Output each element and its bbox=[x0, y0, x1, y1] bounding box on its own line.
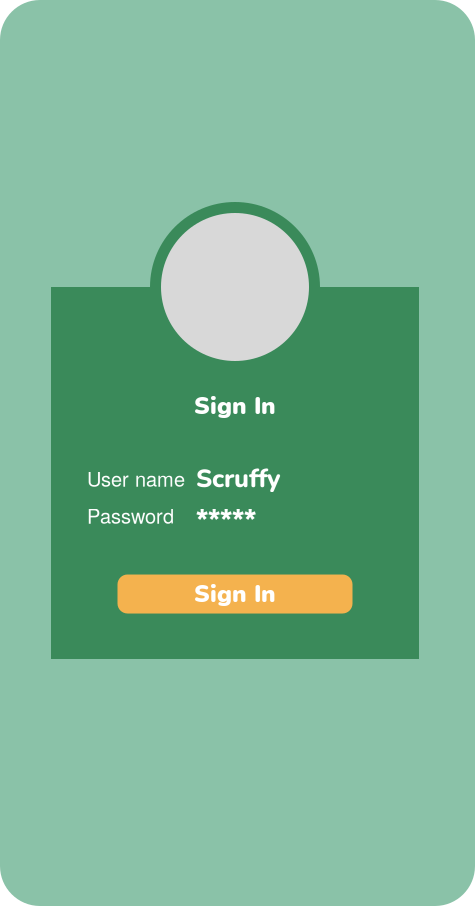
staticText: Scruffy bbox=[196, 462, 281, 496]
staticText: Password bbox=[87, 501, 174, 529]
staticText: User name bbox=[87, 464, 185, 492]
staticText: Sign In bbox=[194, 578, 276, 610]
staticText: Sign In bbox=[194, 390, 276, 422]
staticText: ***** bbox=[196, 502, 256, 536]
button[interactable]: Profile photo bbox=[150, 202, 320, 372]
button[interactable]: Sign In bbox=[117, 574, 352, 613]
